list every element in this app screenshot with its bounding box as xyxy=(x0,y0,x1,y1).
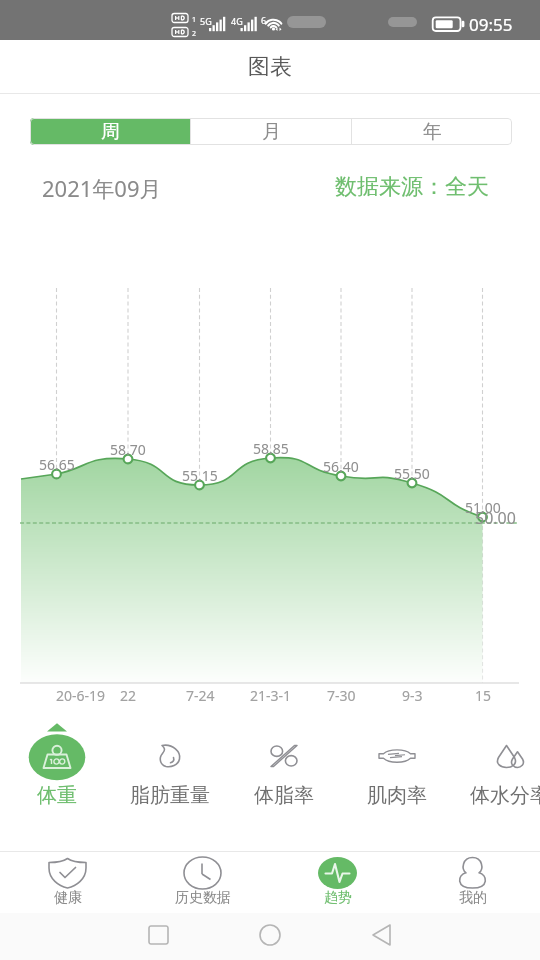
staticText: 历史数据 xyxy=(175,889,231,907)
staticText: 6 xyxy=(261,14,267,26)
staticText: 2 xyxy=(192,29,197,39)
staticText: 体重 xyxy=(37,783,77,808)
staticText: 健康 xyxy=(54,889,82,907)
staticText: 图表 xyxy=(248,53,292,81)
staticText: 趋势 xyxy=(324,889,352,907)
staticText: 1 xyxy=(192,15,197,25)
staticText: 5G xyxy=(200,15,212,27)
staticText: 21-3-1 xyxy=(250,686,292,705)
staticText: 体脂率 xyxy=(254,783,314,808)
button[interactable]: 体水分率 xyxy=(454,718,540,808)
button[interactable]: 月 xyxy=(191,118,351,145)
staticText: 56.40 xyxy=(323,457,359,476)
staticText: 月 xyxy=(262,120,281,144)
staticText: 58.70 xyxy=(110,440,146,459)
button[interactable]: 我的 xyxy=(405,852,540,913)
button[interactable]: 周 xyxy=(30,118,190,145)
staticText: 7-24 xyxy=(186,686,215,705)
staticText: 体水分率 xyxy=(470,783,540,808)
staticText: 58.85 xyxy=(253,439,289,458)
staticText: 2021年09月 xyxy=(42,173,162,201)
button[interactable]: 年 xyxy=(352,118,512,145)
staticText: 56.65 xyxy=(39,455,75,474)
staticText: 7-30 xyxy=(327,686,356,705)
staticText: 22 xyxy=(120,686,137,705)
button[interactable]: 健康 xyxy=(0,852,135,913)
button[interactable]: 体重 xyxy=(1,718,113,808)
staticText: 年 xyxy=(423,120,442,144)
staticText: 20-6-19 xyxy=(56,686,106,705)
staticText: 9-3 xyxy=(402,686,423,705)
button[interactable]: 历史数据 xyxy=(135,852,270,913)
staticText: 4G xyxy=(231,15,243,27)
staticText: 15 xyxy=(475,686,492,705)
staticText: 数据来源：全天 xyxy=(335,173,489,201)
staticText: 55.15 xyxy=(182,466,218,485)
staticText: 周 xyxy=(101,120,120,144)
staticText: 我的 xyxy=(459,889,487,907)
staticText: 肌肉率 xyxy=(367,783,427,808)
button[interactable]: 肌肉率 xyxy=(341,718,453,808)
staticText: 51.00 xyxy=(465,498,501,517)
button[interactable]: 趋势 xyxy=(270,852,405,913)
button[interactable]: 脂肪重量 xyxy=(114,718,226,808)
button[interactable]: 体脂率 xyxy=(228,718,340,808)
staticText: 55.50 xyxy=(394,464,430,483)
staticText: 脂肪重量 xyxy=(130,783,210,808)
staticText: 09:55 xyxy=(469,13,513,36)
staticText: 50.00 xyxy=(475,507,516,529)
